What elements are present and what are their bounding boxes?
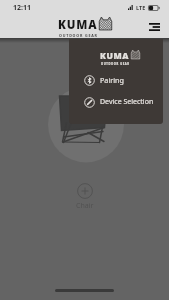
button[interactable]: Menu bbox=[144, 17, 164, 37]
button[interactable]: Add item bbox=[77, 183, 93, 199]
staticText: KUMA bbox=[100, 50, 130, 62]
button[interactable]: Pairing bbox=[69, 69, 163, 91]
staticText: OUTDOOR GEAR bbox=[101, 62, 130, 66]
staticText: KUMA bbox=[58, 17, 98, 33]
staticText: Chair bbox=[76, 201, 94, 211]
button[interactable]: Device Selection bbox=[69, 91, 163, 113]
staticText: OUTDOOR GEAR bbox=[59, 33, 98, 38]
staticText: Device Selection bbox=[100, 97, 154, 107]
staticText: LTE bbox=[136, 4, 146, 11]
staticText: 12:11 bbox=[13, 3, 31, 13]
staticText: Pairing bbox=[100, 75, 124, 85]
